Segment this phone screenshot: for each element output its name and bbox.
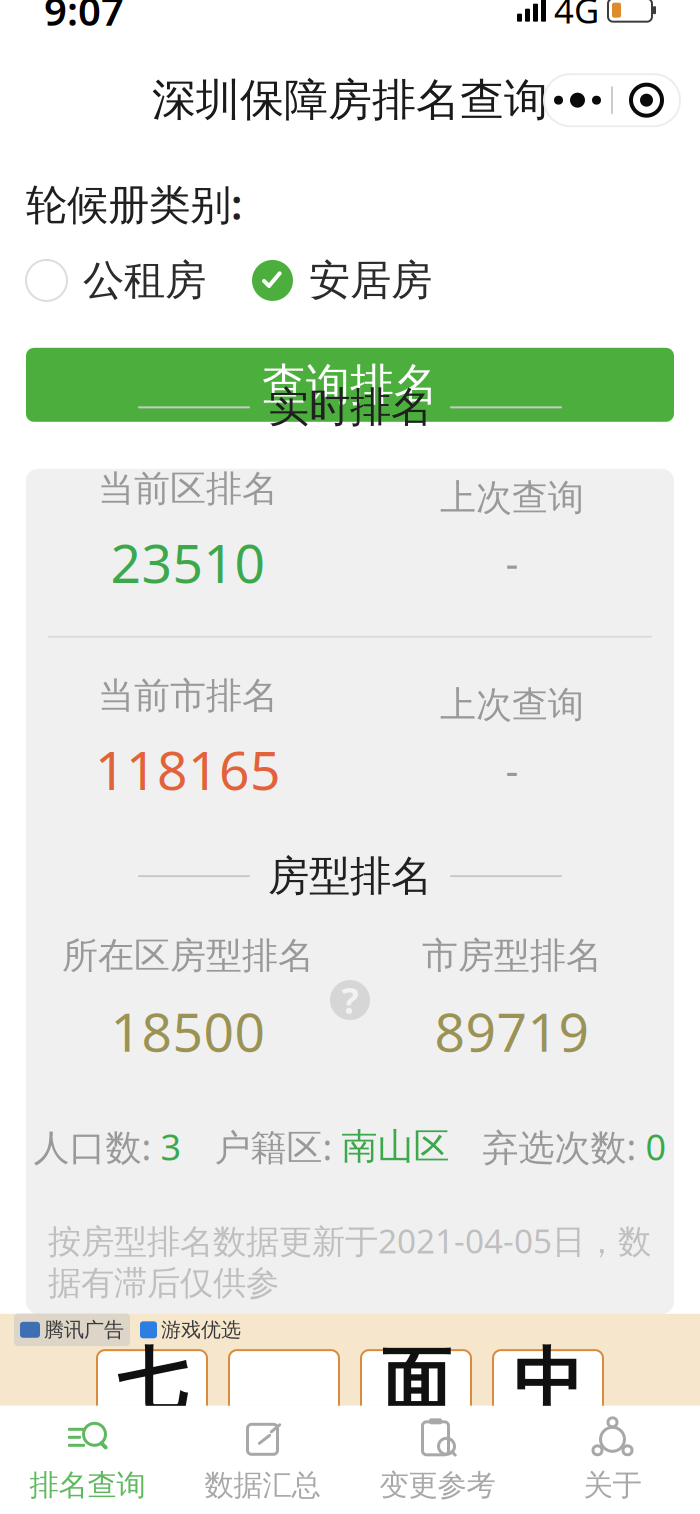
staticText: 弃选次数: <box>449 1123 645 1170</box>
staticText: 市房型排名 <box>422 933 602 978</box>
staticText: 按房型排名数据更新于2021-04-05日，数据有滞后仅供参 <box>48 1218 651 1304</box>
button[interactable]: Close <box>613 74 680 126</box>
button[interactable]: 数据汇总 <box>175 1416 350 1504</box>
staticText: 官网或关注公众号“深圳公租房安居房” <box>48 1409 600 1454</box>
staticText: 关于 <box>583 1467 641 1503</box>
staticText: 118165 <box>95 734 281 805</box>
staticText: ? <box>341 976 358 1024</box>
staticText: 排名查询 <box>29 1467 145 1503</box>
staticText: 安居房 <box>309 255 432 306</box>
staticText: 当前市排名 <box>98 674 278 718</box>
staticText: 中 <box>513 1338 582 1424</box>
button[interactable]: 查询排名 <box>26 348 674 422</box>
button[interactable]: More <box>544 74 611 126</box>
staticText: 公租房 <box>83 255 206 306</box>
staticText: 南山区 <box>341 1124 449 1169</box>
staticText: 4G <box>554 0 599 33</box>
staticText: 上次查询 <box>440 475 584 520</box>
staticText: 所在区房型排名 <box>62 933 314 978</box>
staticText: 户籍区: <box>181 1123 341 1170</box>
staticText: 0 <box>645 1123 666 1170</box>
staticText: 3 <box>160 1123 181 1170</box>
staticText: 房型排名 <box>268 851 432 902</box>
staticText: 数据汇总 <box>204 1467 320 1503</box>
button[interactable]: 安居房 <box>252 255 432 306</box>
button[interactable]: 公租房 <box>26 255 206 306</box>
staticText: 18500 <box>110 996 265 1067</box>
button[interactable]: 变更参考 <box>350 1416 525 1504</box>
staticText: 查询排名 <box>262 358 438 412</box>
staticText: 人口数: <box>33 1123 160 1170</box>
staticText: 89719 <box>434 996 589 1067</box>
staticText: 游戏优选 <box>161 1317 241 1342</box>
staticText: 实时排名 <box>268 382 432 433</box>
staticText: - <box>505 743 518 796</box>
staticText: 面 <box>381 1338 450 1424</box>
staticText: 变更参考 <box>379 1467 495 1503</box>
staticText: 考。数据来源于市住建局官网，了解更多信息请访问市住建局 <box>48 1316 642 1397</box>
staticText: 23510 <box>110 527 265 598</box>
staticText: 9:07 <box>44 0 124 37</box>
staticText: 轮候册类别: <box>26 176 242 231</box>
staticText: 深圳保障房排名查询 <box>152 73 548 127</box>
staticText: 七 <box>117 1338 186 1424</box>
button[interactable]: 排名查询 <box>0 1416 175 1504</box>
button[interactable]: Help about 房型排名 <box>330 976 370 1024</box>
button[interactable]: 关于 <box>525 1416 700 1504</box>
staticText: 腾讯广告 <box>44 1317 124 1342</box>
staticText: - <box>505 536 518 589</box>
staticText: 上次查询 <box>440 683 584 727</box>
staticText: 当前区排名 <box>98 467 278 511</box>
